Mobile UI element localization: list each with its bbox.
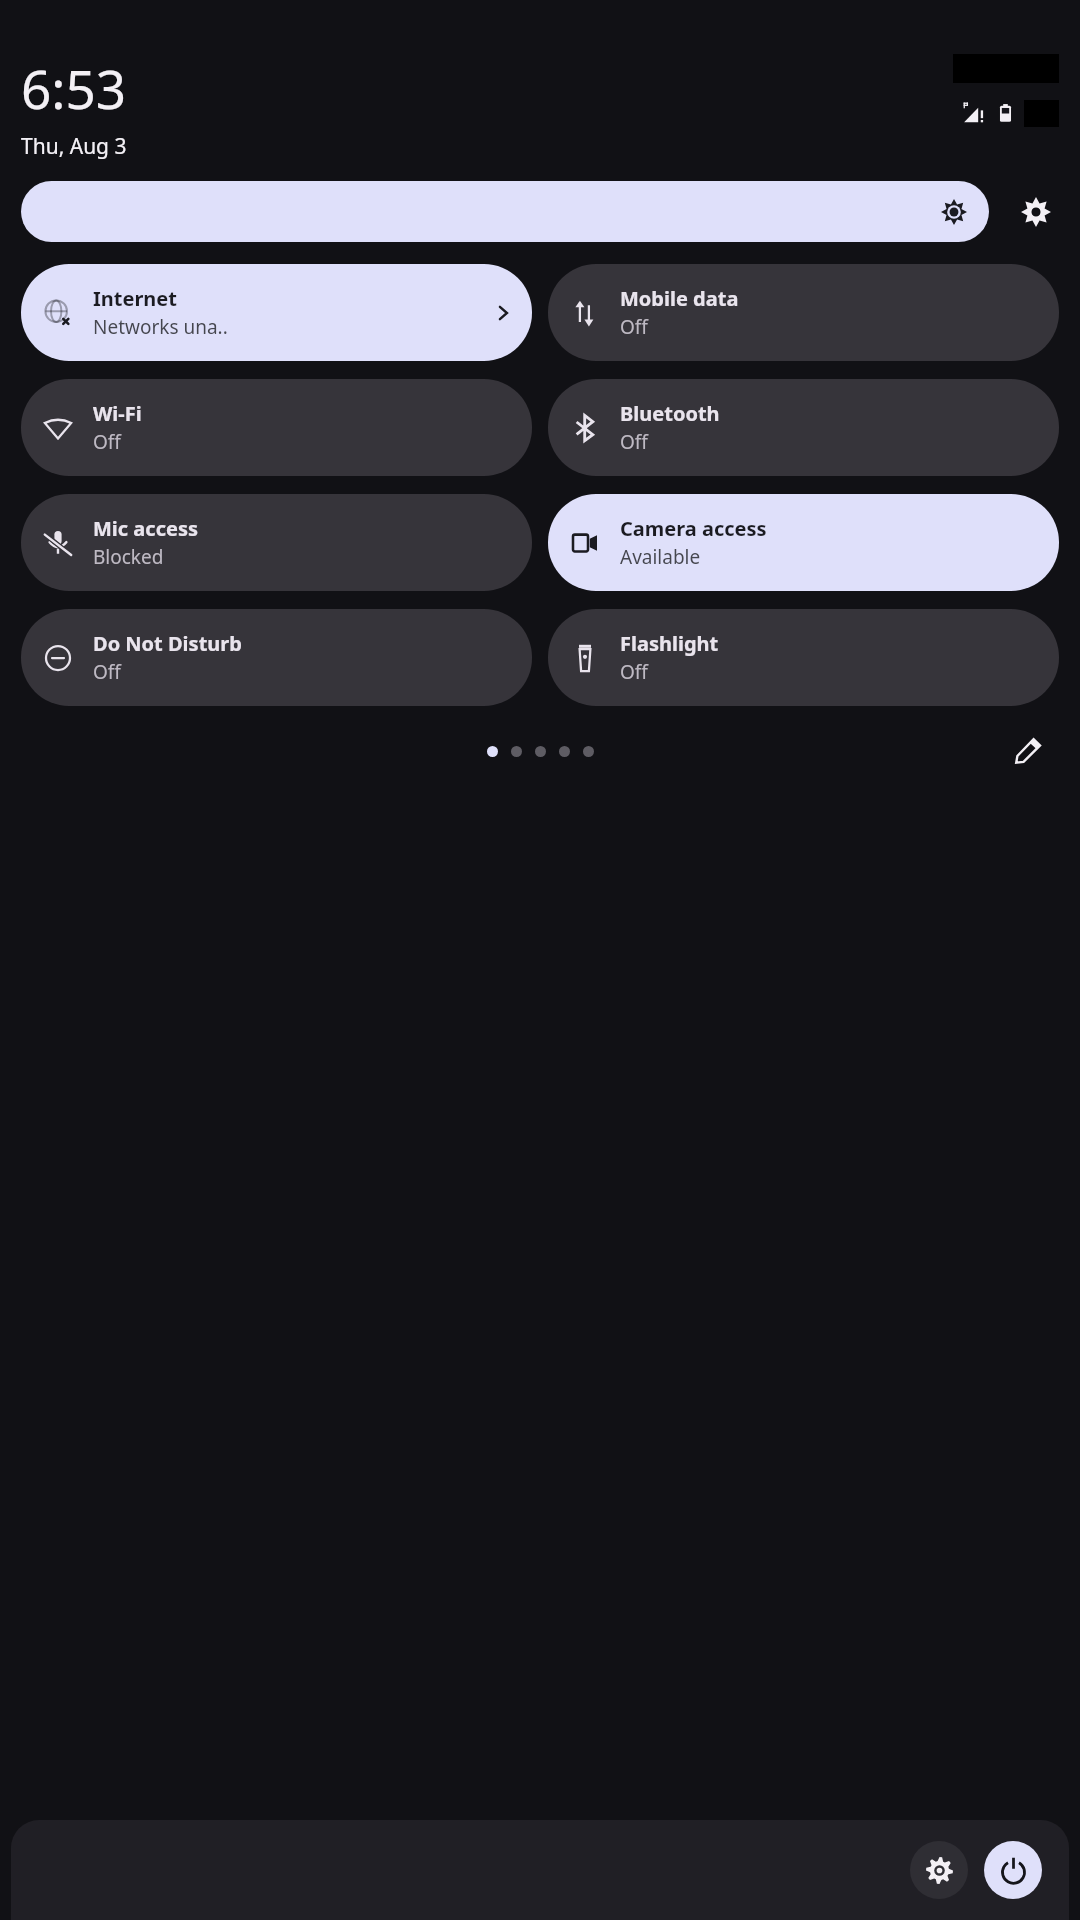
button[interactable]: Flashlight (548, 609, 1059, 706)
staticText: Off (620, 659, 648, 685)
staticText: Thu, Aug 3 (21, 132, 127, 161)
staticText: Do Not Disturb (93, 630, 242, 657)
button[interactable] (21, 181, 989, 242)
staticText: Wi-Fi (93, 400, 142, 427)
button[interactable]: Camera access (548, 494, 1059, 591)
staticText: Networks una.. (93, 314, 228, 340)
button[interactable]: Wi-Fi (21, 379, 532, 476)
button[interactable]: Internet (21, 264, 532, 361)
button[interactable]: Bluetooth (548, 379, 1059, 476)
staticText: Off (93, 429, 121, 455)
staticText: Off (620, 314, 648, 340)
staticText: Off (93, 659, 121, 685)
button[interactable]: Edit tiles (1006, 729, 1050, 773)
button[interactable]: Power (984, 1841, 1042, 1899)
button[interactable]: Mobile data (548, 264, 1059, 361)
staticText: Available (620, 544, 701, 570)
button[interactable]: Settings (910, 1841, 968, 1899)
staticText: Flashlight (620, 630, 719, 657)
button[interactable]: Do Not Disturb (21, 609, 532, 706)
staticText: Mic access (93, 515, 198, 542)
staticText: Blocked (93, 544, 164, 570)
staticText: Camera access (620, 515, 767, 542)
staticText: Internet (93, 285, 177, 312)
staticText: Bluetooth (620, 400, 720, 427)
button[interactable]: Auto brightness (1013, 189, 1059, 235)
staticText: 6:53 (21, 52, 127, 124)
staticText: Mobile data (620, 285, 739, 312)
button[interactable]: Mic access (21, 494, 532, 591)
staticText: Off (620, 429, 648, 455)
